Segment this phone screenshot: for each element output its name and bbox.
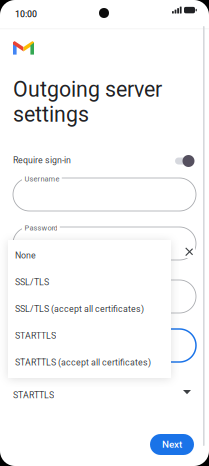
button[interactable]: None	[8, 242, 171, 269]
button[interactable]: Require sign-in	[175, 154, 195, 168]
staticText: Username	[24, 175, 59, 183]
staticText: Port	[24, 326, 38, 334]
staticText: Password	[24, 224, 57, 232]
staticText: Server	[24, 277, 46, 285]
button[interactable]: STARTTLS (accept all certificates)	[8, 349, 171, 376]
button[interactable]: SSL/TLS	[8, 269, 171, 296]
button[interactable]: SSL/TLS (accept all certificates)	[8, 296, 171, 322]
staticText: Next	[162, 439, 182, 450]
button[interactable]: Next	[150, 434, 194, 455]
staticText: 10:00	[15, 9, 37, 19]
staticText: STARTTLS	[15, 331, 56, 341]
staticText: SSL/TLS (accept all certificates)	[15, 304, 144, 314]
staticText: settings	[13, 102, 89, 127]
staticText: None	[15, 250, 36, 261]
staticText: STARTTLS	[13, 390, 54, 400]
staticText: Require sign-in	[13, 155, 71, 165]
button[interactable]: Clear	[184, 247, 195, 258]
staticText: Outgoing server	[13, 77, 162, 102]
staticText: STARTTLS (accept all certificates)	[15, 357, 151, 368]
staticText: SSL/TLS	[15, 277, 49, 287]
button[interactable]: STARTTLS	[8, 322, 171, 349]
